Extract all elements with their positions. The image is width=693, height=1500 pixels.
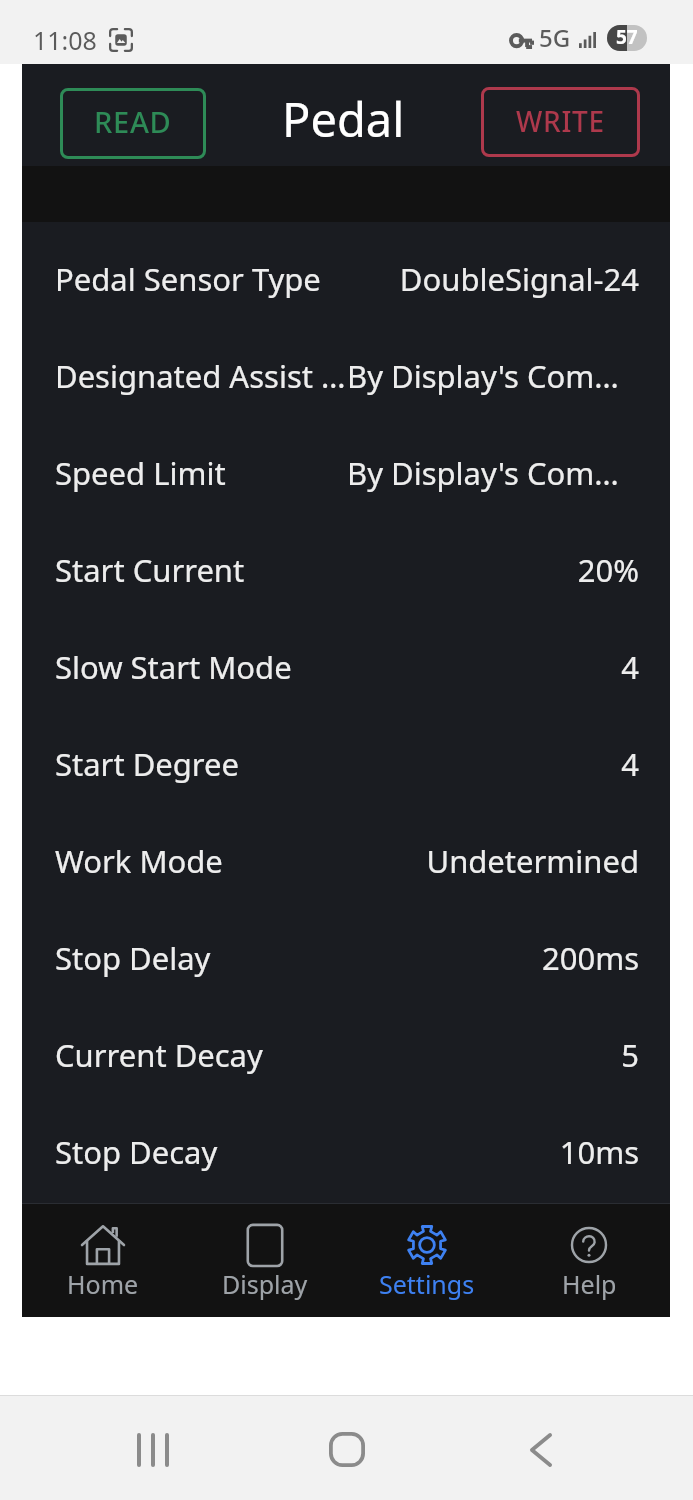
button[interactable]: Home (302, 1395, 392, 1500)
button[interactable]: Stop Decay (22, 1103, 670, 1200)
staticText: Designated Assist … (55, 355, 347, 397)
staticText: Help (562, 1267, 617, 1301)
staticText: 200ms (347, 937, 639, 979)
staticText: 11:08 (33, 23, 97, 57)
button[interactable]: Help (508, 1204, 670, 1317)
button[interactable]: WRITE (481, 87, 640, 157)
staticText: Pedal (282, 87, 405, 151)
staticText: By Display's Com… (347, 355, 639, 397)
button[interactable]: Display (184, 1204, 346, 1317)
button[interactable]: Stop Delay (22, 909, 670, 1006)
button[interactable]: Speed Limit (22, 424, 670, 521)
staticText: 10ms (347, 1131, 639, 1173)
button[interactable]: Slow Start Mode (22, 618, 670, 715)
staticText: Start Current (55, 549, 347, 591)
staticText: Work Mode (55, 840, 347, 882)
button[interactable]: Current Decay (22, 1006, 670, 1103)
staticText: 20% (347, 549, 639, 591)
staticText: 4 (347, 743, 639, 785)
staticText: WRITE (516, 102, 605, 140)
staticText: Home (67, 1267, 139, 1301)
staticText: Settings (379, 1267, 475, 1301)
button[interactable]: Work Mode (22, 812, 670, 909)
staticText: 5G (539, 21, 571, 54)
staticText: 4 (347, 646, 639, 688)
button[interactable]: Settings (346, 1204, 508, 1317)
staticText: Speed Limit (55, 452, 347, 494)
staticText: 57 (616, 25, 638, 50)
staticText: Display (222, 1267, 308, 1301)
button[interactable]: Home (22, 1204, 184, 1317)
button[interactable]: Start Current (22, 521, 670, 618)
staticText: Stop Delay (55, 937, 347, 979)
button[interactable]: Back (496, 1395, 586, 1500)
button[interactable]: READ (60, 88, 206, 159)
staticText: By Display's Com… (347, 452, 639, 494)
staticText: Undetermined (347, 840, 639, 882)
button[interactable]: Recents (108, 1395, 198, 1500)
staticText: Pedal Sensor Type (55, 258, 347, 300)
staticText: READ (94, 102, 172, 141)
button[interactable]: Designated Assist … (22, 327, 670, 424)
staticText: 5 (347, 1034, 639, 1076)
staticText: Slow Start Mode (55, 646, 347, 688)
button[interactable]: Pedal Sensor Type (22, 230, 670, 327)
button[interactable]: Start Degree (22, 715, 670, 812)
staticText: Start Degree (55, 743, 347, 785)
staticText: Stop Decay (55, 1131, 347, 1173)
staticText: DoubleSignal-24 (347, 258, 639, 300)
staticText: Current Decay (55, 1034, 347, 1076)
